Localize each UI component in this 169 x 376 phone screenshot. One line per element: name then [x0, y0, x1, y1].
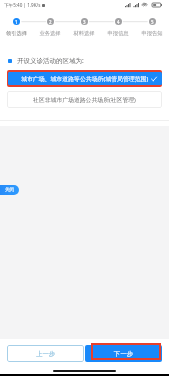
staticText: 申报信息: [101, 30, 135, 37]
staticText: 材料选择: [67, 30, 101, 37]
button[interactable]: 关闭: [0, 185, 19, 195]
button[interactable]: 上一步: [7, 345, 84, 362]
button[interactable]: 城市广场、城市道路等公共场所(城管局管理范围): [8, 72, 162, 85]
button[interactable]: 社区非城市广场道路公共场所(社区管理): [7, 91, 162, 108]
staticText: 城市广场、城市道路等公共场所(城管局管理范围): [21, 75, 149, 83]
staticText: 关闭: [5, 187, 15, 193]
staticText: 下午5:40 | 1.9K/s: [4, 2, 41, 8]
staticText: 社区非城市广场道路公共场所(社区管理): [33, 96, 136, 104]
staticText: 下一步: [114, 350, 134, 358]
staticText: 5: [151, 19, 154, 25]
staticText: 上一步: [36, 350, 56, 358]
staticText: 4: [117, 19, 120, 25]
staticText: 开设义诊活动的区域为:: [17, 56, 84, 65]
staticText: 1: [15, 19, 18, 25]
staticText: 3: [83, 19, 86, 25]
staticText: 业务选择: [33, 30, 67, 37]
button[interactable]: 下一步: [85, 345, 162, 362]
staticText: 申报告知: [135, 30, 169, 37]
staticText: 领引选择: [0, 30, 33, 37]
staticText: 2: [49, 19, 52, 25]
